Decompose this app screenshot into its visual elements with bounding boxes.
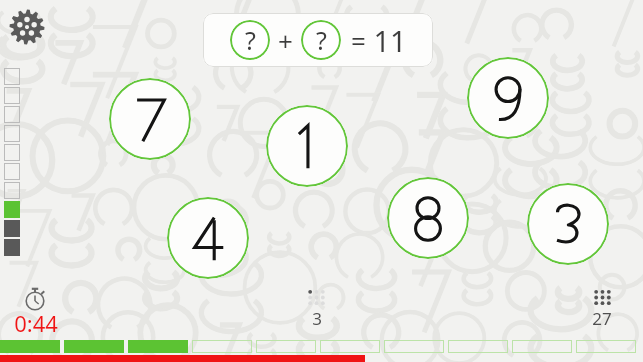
button[interactable]: Unknown addend xyxy=(203,13,433,67)
staticText: 0:44 xyxy=(14,308,58,338)
staticText: = xyxy=(351,23,366,58)
button[interactable]: Number 8 xyxy=(387,177,469,259)
button[interactable]: Unknown addend xyxy=(301,20,341,60)
staticText: + xyxy=(278,23,293,58)
button[interactable]: Unknown addend xyxy=(230,20,270,60)
button[interactable]: Number 3 xyxy=(527,183,609,265)
button[interactable]: Number 7 xyxy=(109,78,191,160)
staticText: ? xyxy=(316,23,327,57)
staticText: 3 xyxy=(312,307,322,330)
button[interactable]: Number 4 xyxy=(167,197,249,279)
staticText: 27 xyxy=(592,307,612,330)
button[interactable]: Number 9 xyxy=(467,57,549,139)
staticText: 11 xyxy=(373,21,407,60)
button[interactable]: Settings xyxy=(8,8,46,46)
staticText: ? xyxy=(245,23,256,57)
button[interactable]: Number 1 xyxy=(266,105,348,187)
